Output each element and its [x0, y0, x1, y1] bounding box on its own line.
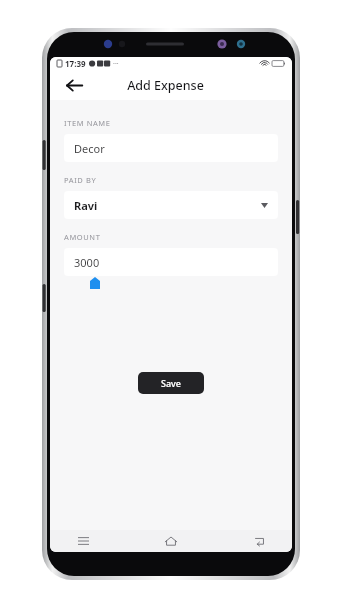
button[interactable]: Ravi	[64, 191, 278, 219]
staticText: ···	[113, 59, 119, 69]
button[interactable]: Recent apps	[70, 530, 96, 552]
button[interactable]: Back	[62, 73, 86, 97]
button[interactable]: Save	[138, 372, 204, 394]
staticText: Add Expense	[127, 77, 204, 94]
staticText: Save	[161, 377, 182, 389]
button[interactable]: 3000	[64, 248, 278, 276]
button[interactable]: Home	[158, 530, 184, 552]
staticText: Ravi	[74, 198, 98, 213]
staticText: PAID BY	[64, 175, 97, 185]
staticText: 17:39	[65, 58, 86, 69]
button[interactable]: Back	[246, 530, 272, 552]
staticText: AMOUNT	[64, 232, 101, 242]
staticText: Decor	[74, 141, 105, 156]
staticText: ITEM NAME	[64, 118, 111, 128]
staticText: 3000	[74, 255, 100, 270]
button[interactable]: Decor	[64, 134, 278, 162]
